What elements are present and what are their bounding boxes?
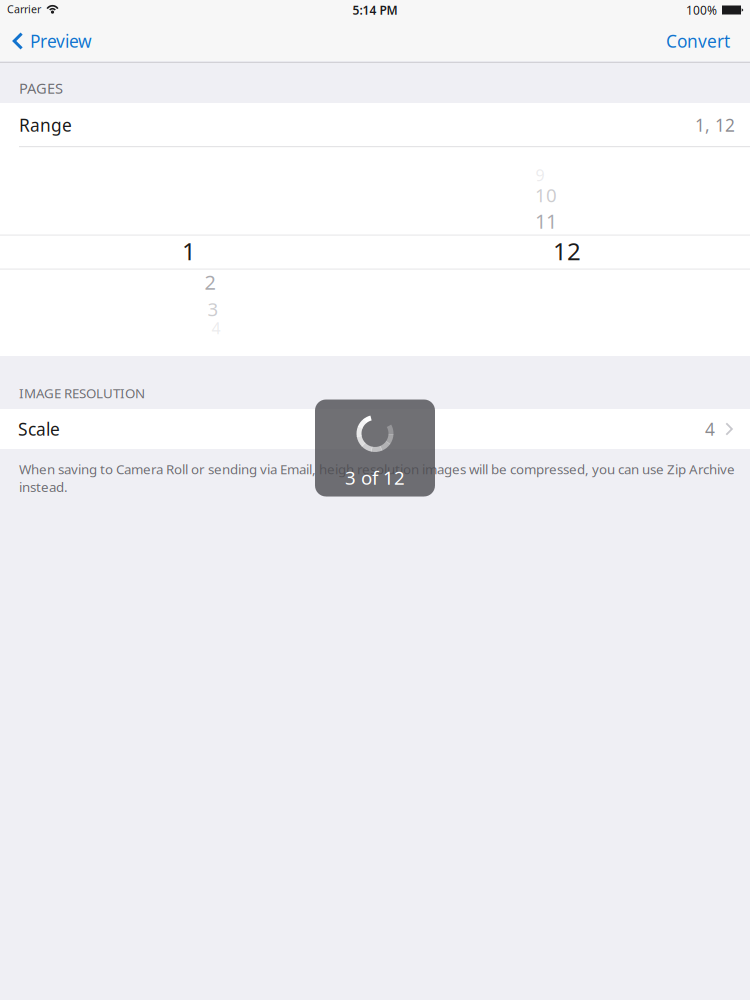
button[interactable]: Scale <box>0 409 750 449</box>
button[interactable]: Range <box>0 103 750 146</box>
staticText: Carrier <box>7 2 41 16</box>
staticText: 100% <box>686 2 717 18</box>
staticText: 10 <box>535 183 557 207</box>
staticText: Scale <box>18 417 60 440</box>
staticText: PAGES <box>19 78 63 98</box>
button[interactable]: Preview <box>4 20 100 61</box>
staticText: 9 <box>535 164 544 186</box>
staticText: 1, 12 <box>695 113 735 136</box>
staticText: 3 of 12 <box>345 465 405 490</box>
staticText: IMAGE RESOLUTION <box>19 384 145 402</box>
staticText: 11 <box>535 208 557 234</box>
staticText: 12 <box>553 235 581 267</box>
staticText: 5:14 PM <box>352 2 397 18</box>
staticText: Convert <box>666 29 730 52</box>
staticText: Range <box>19 113 72 136</box>
staticText: 1 <box>182 235 196 267</box>
staticText: 4 <box>211 317 220 339</box>
staticText: Preview <box>30 29 92 52</box>
staticText: 2 <box>204 269 215 295</box>
staticText: When saving to Camera Roll or sending vi… <box>19 460 735 496</box>
staticText: 4 <box>705 417 715 440</box>
staticText: 3 <box>207 297 218 321</box>
button[interactable]: Convert <box>654 20 742 61</box>
